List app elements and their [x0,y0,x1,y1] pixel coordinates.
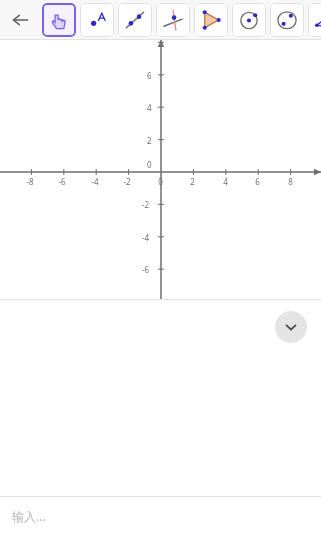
button[interactable]: Point [80,3,114,37]
button[interactable]: Polygon [194,3,228,37]
staticText: 2 [190,176,195,187]
staticText: 8 [288,176,293,187]
button[interactable]: Circle [232,3,266,37]
button[interactable]: Move [42,3,76,37]
staticText: -6 [142,264,150,275]
staticText: -4 [91,176,99,187]
button[interactable]: Angle [308,3,321,37]
staticText: 6 [147,70,152,81]
staticText: 6 [255,176,260,187]
staticText: 4 [147,102,152,113]
staticText: 0 [158,176,163,187]
staticText: -4 [142,232,150,243]
button[interactable]: 输入... [0,497,321,534]
staticText: -2 [123,176,131,187]
staticText: -8 [26,176,34,187]
staticText: 输入... [12,508,46,524]
button[interactable]: Back [4,8,36,32]
staticText: -6 [58,176,66,187]
staticText: 2 [147,135,152,146]
staticText: 0 [147,159,152,170]
staticText: -2 [142,199,150,210]
button[interactable]: Line [118,3,152,37]
button[interactable]: Collapse [275,311,307,343]
button[interactable]: Ellipse [270,3,304,37]
staticText: 4 [223,176,228,187]
button[interactable]: Perpendicular line [156,3,190,37]
